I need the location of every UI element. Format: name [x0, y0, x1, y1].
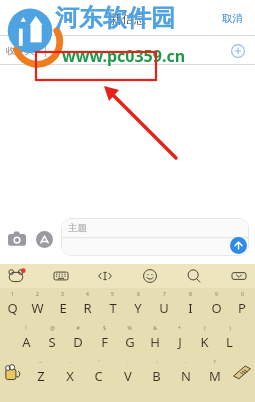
- button[interactable]: 删除: [229, 359, 255, 385]
- staticText: www.pc0359.cn: [62, 45, 186, 67]
- staticText: S: [48, 333, 56, 351]
- staticText: C: [94, 367, 103, 385]
- staticText: X: [66, 367, 74, 385]
- button[interactable]: :: [142, 359, 171, 385]
- staticText: 取消: [222, 12, 243, 25]
- button[interactable]: 3: [50, 291, 75, 317]
- button[interactable]: 9: [203, 291, 229, 317]
- staticText: $: [103, 325, 106, 332]
- staticText: 主题: [68, 222, 87, 234]
- staticText: ?: [213, 359, 216, 366]
- staticText: 新信息: [110, 11, 146, 26]
- button[interactable]: 2: [25, 291, 50, 317]
- staticText: %: [127, 325, 132, 332]
- staticText: O: [211, 299, 222, 317]
- staticText: ): [229, 325, 231, 332]
- staticText: 8: [189, 291, 192, 298]
- staticText: Y: [134, 299, 142, 317]
- staticText: B: [152, 367, 161, 385]
- staticText: A: [22, 333, 31, 351]
- staticText: @: [50, 325, 55, 332]
- staticText: ·: [127, 359, 129, 366]
- staticText: W: [31, 299, 44, 317]
- button[interactable]: 4: [75, 291, 100, 317]
- button[interactable]: 搜索: [184, 266, 204, 286]
- button[interactable]: ): [217, 325, 242, 351]
- staticText: 5: [111, 291, 114, 298]
- button[interactable]: ·: [113, 359, 142, 385]
- button[interactable]: %: [117, 325, 142, 351]
- button[interactable]: 添加联系人: [225, 38, 251, 64]
- staticText: *: [178, 325, 181, 332]
- staticText: F: [101, 333, 108, 351]
- staticText: L: [226, 333, 233, 351]
- staticText: 1: [11, 291, 14, 298]
- button[interactable]: 1: [0, 291, 25, 317]
- staticText: E: [59, 299, 67, 317]
- button[interactable]: 主题: [61, 218, 249, 256]
- button[interactable]: 发送: [230, 237, 247, 254]
- button[interactable]: 7: [151, 291, 177, 317]
- button[interactable]: 输入法logo: [6, 266, 26, 286]
- button[interactable]: 8: [177, 291, 203, 317]
- staticText: U: [159, 299, 169, 317]
- staticText: V: [124, 367, 132, 385]
- button[interactable]: *: [167, 325, 192, 351]
- button[interactable]: !: [13, 325, 39, 351]
- button[interactable]: 表情: [140, 266, 160, 286]
- staticText: ': [98, 359, 100, 366]
- staticText: J: [178, 333, 182, 351]
- staticText: N: [181, 367, 191, 385]
- button[interactable]: #: [65, 325, 91, 351]
- staticText: #: [76, 325, 80, 332]
- staticText: 9: [215, 291, 218, 298]
- staticText: ·: [185, 359, 187, 366]
- staticText: 7: [163, 291, 166, 298]
- button[interactable]: 5: [100, 291, 125, 317]
- button[interactable]: (: [192, 325, 217, 351]
- staticText: Z: [37, 367, 45, 385]
- staticText: T: [109, 299, 117, 317]
- staticText: 0: [241, 291, 244, 298]
- button[interactable]: 相机: [6, 228, 28, 250]
- staticText: &: [153, 325, 157, 332]
- staticText: 收件人:: [6, 44, 38, 57]
- button[interactable]: 取消: [210, 4, 255, 33]
- staticText: 2: [36, 291, 39, 298]
- staticText: 6: [137, 291, 140, 298]
- button[interactable]: ·: [171, 359, 200, 385]
- staticText: D: [73, 333, 83, 351]
- staticText: G: [125, 333, 135, 351]
- staticText: H: [150, 333, 160, 351]
- staticText: Q: [7, 299, 18, 317]
- button[interactable]: 移动光标: [95, 266, 115, 286]
- button[interactable]: Shift: [0, 359, 26, 385]
- button[interactable]: @: [39, 325, 65, 351]
- staticText: K: [200, 333, 209, 351]
- button[interactable]: &: [142, 325, 167, 351]
- button[interactable]: App Store: [33, 228, 55, 250]
- button[interactable]: ?: [200, 359, 229, 385]
- button[interactable]: 6: [125, 291, 151, 317]
- button[interactable]: 0: [229, 291, 255, 317]
- button[interactable]: ·: [55, 359, 84, 385]
- staticText: I: [188, 299, 193, 317]
- button[interactable]: 键盘: [51, 266, 71, 286]
- staticText: ·: [69, 359, 71, 366]
- staticText: :: [156, 359, 158, 366]
- staticText: 河东软件园: [55, 3, 175, 33]
- staticText: ~: [39, 359, 42, 366]
- staticText: P: [238, 299, 246, 317]
- staticText: (: [204, 325, 206, 332]
- button[interactable]: ': [84, 359, 113, 385]
- staticText: 3: [61, 291, 64, 298]
- staticText: !: [25, 325, 27, 332]
- button[interactable]: ~: [26, 359, 55, 385]
- button[interactable]: $: [91, 325, 117, 351]
- button[interactable]: 收起键盘: [229, 266, 249, 286]
- staticText: 4: [86, 291, 89, 298]
- staticText: R: [83, 299, 92, 317]
- staticText: M: [209, 367, 221, 385]
